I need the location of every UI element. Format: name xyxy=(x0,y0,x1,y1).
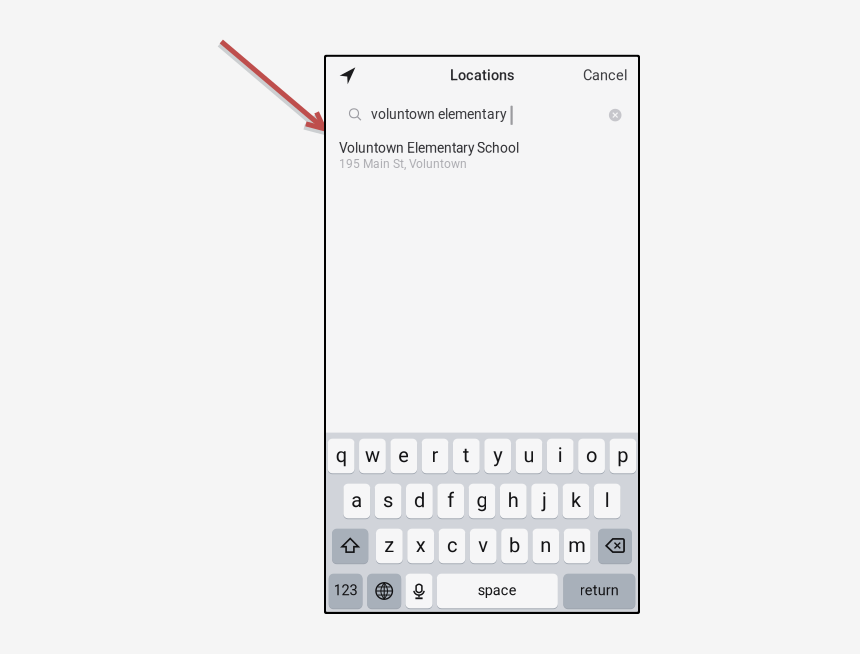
staticText: n xyxy=(540,534,551,557)
button[interactable]: p xyxy=(609,438,636,474)
button[interactable]: k xyxy=(562,483,589,519)
button[interactable]: u xyxy=(515,438,542,474)
staticText: g xyxy=(476,489,487,512)
button[interactable]: y xyxy=(484,438,511,474)
button[interactable]: j xyxy=(531,483,558,519)
staticText: w xyxy=(365,444,380,467)
button[interactable]: s xyxy=(375,483,401,519)
staticText: h xyxy=(508,489,519,512)
button[interactable]: Cancel xyxy=(583,60,628,90)
staticText: m xyxy=(568,534,586,557)
staticText: q xyxy=(336,444,347,467)
button[interactable]: r xyxy=(422,438,448,474)
staticText: s xyxy=(383,489,393,512)
staticText: e xyxy=(398,444,409,467)
staticText: Voluntown Elementary School xyxy=(339,140,519,156)
button[interactable]: b xyxy=(501,528,528,564)
staticText: j xyxy=(542,489,547,512)
staticText: Cancel xyxy=(583,67,628,84)
button[interactable]: c xyxy=(439,528,465,564)
button[interactable]: l xyxy=(594,483,621,519)
button[interactable]: n xyxy=(532,528,559,564)
staticText: l xyxy=(605,489,610,512)
staticText: i xyxy=(558,444,563,467)
button[interactable]: space xyxy=(437,573,558,609)
button[interactable]: 123 xyxy=(329,573,362,609)
staticText: return xyxy=(580,582,619,599)
staticText: x xyxy=(416,534,426,557)
button[interactable]: a xyxy=(343,483,370,519)
staticText: Locations xyxy=(450,67,514,84)
staticText: k xyxy=(571,489,581,512)
staticText: v xyxy=(478,534,488,557)
button[interactable]: v xyxy=(470,528,497,564)
staticText: c xyxy=(447,534,457,557)
staticText: d xyxy=(414,489,425,512)
staticText: 123 xyxy=(334,582,358,599)
button[interactable]: o xyxy=(578,438,605,474)
button[interactable]: f xyxy=(437,483,464,519)
button[interactable]: g xyxy=(469,483,495,519)
button[interactable]: Clear text xyxy=(604,104,626,126)
staticText: voluntown elementary xyxy=(371,106,507,122)
button[interactable]: z xyxy=(376,528,403,564)
button[interactable]: q xyxy=(328,438,355,474)
button[interactable]: Delete xyxy=(598,528,632,564)
staticText: p xyxy=(617,444,628,467)
button[interactable]: Voluntown Elementary School xyxy=(326,131,638,179)
staticText: 195 Main St, Voluntown xyxy=(339,157,467,171)
staticText: r xyxy=(431,444,438,467)
button[interactable]: Next keyboard xyxy=(367,573,401,609)
button[interactable]: i xyxy=(547,438,574,474)
button[interactable]: Dictate xyxy=(405,573,432,609)
staticText: o xyxy=(586,444,597,467)
button[interactable]: Current location xyxy=(334,60,360,90)
button[interactable]: t xyxy=(453,438,480,474)
button[interactable]: Shift xyxy=(332,528,368,564)
staticText: b xyxy=(509,534,520,557)
button[interactable]: w xyxy=(359,438,386,474)
staticText: t xyxy=(463,444,470,467)
button[interactable]: h xyxy=(500,483,527,519)
staticText: u xyxy=(523,444,534,467)
button[interactable]: return xyxy=(563,573,635,609)
staticText: a xyxy=(351,489,362,512)
staticText: y xyxy=(493,444,502,467)
button[interactable]: m xyxy=(564,528,591,564)
staticText: space xyxy=(478,582,517,599)
staticText: z xyxy=(384,534,394,557)
button[interactable]: x xyxy=(407,528,434,564)
button[interactable]: e xyxy=(390,438,417,474)
staticText: f xyxy=(447,489,454,512)
button[interactable]: d xyxy=(406,483,433,519)
